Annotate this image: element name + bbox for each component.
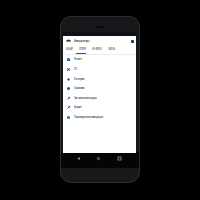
button[interactable]: Recent apps xyxy=(116,155,123,162)
staticText: КОНТАКТЫ xyxy=(92,47,102,51)
button[interactable]: УСЛУГИ xyxy=(76,47,89,51)
staticText: ЗАПИСЬ xyxy=(108,47,116,51)
staticText: Ремонт xyxy=(74,57,82,61)
button[interactable]: Противоугонные авто-услуги xyxy=(63,112,136,122)
staticText: Кредит xyxy=(74,105,82,109)
button[interactable]: АКЦИИ xyxy=(63,47,76,51)
button[interactable]: Ремонт xyxy=(63,54,136,64)
button[interactable]: КОНТАКТЫ xyxy=(89,47,105,51)
staticText: Запчасти и аксессуары xyxy=(74,96,97,100)
button[interactable]: Тех. сервис xyxy=(63,74,136,84)
staticText: Страховка xyxy=(74,86,85,90)
staticText: Тех. сервис xyxy=(74,77,85,81)
button[interactable]: ТО xyxy=(63,64,136,74)
other: Logo xyxy=(66,39,71,42)
staticText: УСЛУГИ xyxy=(79,47,86,51)
staticText: Автодилеры xyxy=(74,38,90,43)
button[interactable]: Страховка xyxy=(63,83,136,93)
button[interactable]: Запчасти и аксессуары xyxy=(63,93,136,103)
button[interactable]: Кредит xyxy=(63,102,136,112)
button[interactable]: Back xyxy=(75,155,82,162)
button[interactable]: Home xyxy=(95,155,102,162)
staticText: АКЦИИ xyxy=(66,47,73,51)
button[interactable]: ЗАПИСЬ xyxy=(105,47,119,51)
staticText: ТО xyxy=(74,67,77,71)
button[interactable]: Menu xyxy=(129,38,135,44)
staticText: Противоугонные авто-услуги xyxy=(74,115,103,119)
